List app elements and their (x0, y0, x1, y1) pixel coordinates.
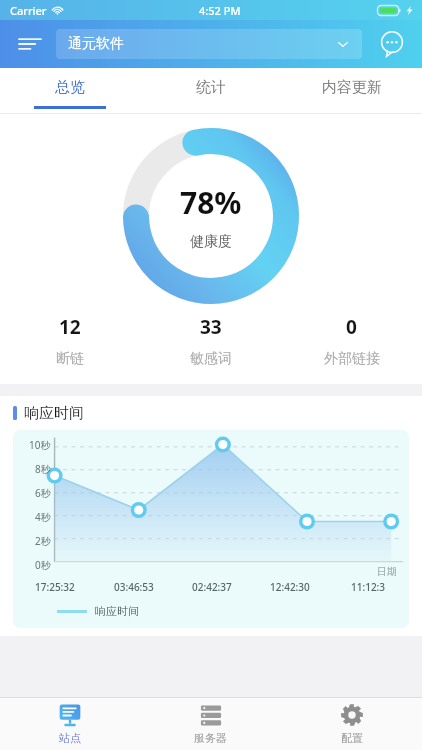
button[interactable]: 统计 (140, 68, 281, 113)
button[interactable]: 配置 (281, 698, 422, 750)
staticText: 8秒 (35, 462, 51, 476)
staticText: 02:42:37 (192, 580, 232, 594)
button[interactable]: 0 (281, 312, 422, 370)
staticText: 17:25:32 (35, 580, 75, 594)
button[interactable]: Menu (12, 26, 48, 62)
staticText: 配置 (341, 731, 363, 745)
staticText: 敏感词 (190, 350, 232, 368)
button[interactable]: 服务器 (140, 698, 281, 750)
staticText: 统计 (196, 78, 226, 97)
staticText: 0秒 (35, 558, 51, 572)
staticText: 响应时间 (24, 404, 84, 423)
staticText: 内容更新 (322, 78, 382, 97)
button[interactable]: 通元软件 (56, 29, 362, 59)
staticText: Carrier (10, 3, 47, 18)
staticText: 10秒 (29, 438, 51, 452)
button[interactable]: 站点 (0, 698, 140, 750)
staticText: 6秒 (35, 486, 51, 500)
button[interactable]: 内容更新 (281, 68, 422, 113)
staticText: 11:12:3 (351, 580, 386, 594)
staticText: 78% (180, 182, 242, 223)
staticText: 外部链接 (324, 350, 380, 368)
button[interactable]: 10秒 (13, 430, 409, 628)
staticText: 4:52 PM (199, 3, 241, 18)
staticText: 响应时间 (95, 604, 139, 618)
staticText: 总览 (55, 78, 85, 97)
staticText: 2秒 (35, 534, 51, 548)
staticText: 站点 (59, 731, 81, 745)
staticText: 0 (346, 314, 357, 340)
button[interactable]: Messages (374, 26, 410, 62)
button[interactable]: 33 (140, 312, 281, 370)
button[interactable]: 总览 (0, 68, 140, 113)
staticText: 12:42:30 (270, 580, 310, 594)
staticText: 03:46:53 (114, 580, 154, 594)
staticText: 日期 (377, 565, 397, 578)
staticText: 健康度 (190, 233, 232, 251)
staticText: 4秒 (35, 510, 51, 524)
button[interactable]: 12 (0, 312, 140, 370)
staticText: 33 (200, 314, 222, 340)
staticText: 断链 (56, 350, 84, 368)
staticText: 通元软件 (68, 35, 124, 53)
staticText: 服务器 (194, 731, 227, 745)
staticText: 12 (59, 314, 81, 340)
